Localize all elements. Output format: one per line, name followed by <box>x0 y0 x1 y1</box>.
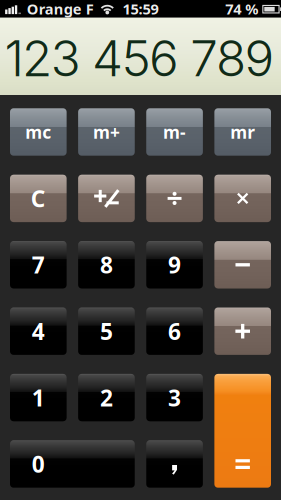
staticText: 5 <box>100 316 113 346</box>
staticText: 2 <box>100 382 113 413</box>
staticText: mc <box>25 120 51 143</box>
button[interactable]: C <box>10 175 67 222</box>
staticText: 1 <box>32 382 45 413</box>
staticText: C <box>31 183 46 213</box>
button[interactable]: 4 <box>10 307 67 355</box>
staticText: mr <box>230 120 255 143</box>
button[interactable]: m+ <box>78 108 135 156</box>
staticText: 74 % <box>225 0 258 19</box>
staticText: 7 <box>32 250 45 280</box>
button[interactable]: 5 <box>78 307 135 355</box>
staticText: 9 <box>168 250 181 280</box>
button[interactable]: 6 <box>146 307 203 355</box>
button[interactable]: Minus <box>214 241 271 288</box>
button[interactable]: 8 <box>78 241 135 288</box>
staticText: 15:59 <box>122 0 158 19</box>
staticText: 0 <box>32 449 45 479</box>
button[interactable]: Plus <box>214 307 271 355</box>
staticText: 3 <box>168 382 181 413</box>
button[interactable]: Plus minus <box>78 175 135 222</box>
staticText: 6 <box>168 316 181 346</box>
button[interactable]: mr <box>214 108 271 156</box>
button[interactable]: 9 <box>146 241 203 288</box>
button[interactable]: 1 <box>10 374 67 421</box>
staticText: 8 <box>100 250 113 280</box>
staticText: m+ <box>93 120 120 143</box>
staticText: 4 <box>32 316 45 346</box>
button[interactable]: Equals <box>214 374 271 488</box>
button[interactable]: Multiply <box>214 175 271 222</box>
button[interactable]: Decimal separator <box>146 440 203 488</box>
button[interactable]: 0 <box>10 440 135 488</box>
button[interactable]: mc <box>10 108 67 156</box>
button[interactable]: m- <box>146 108 203 156</box>
staticText: m- <box>163 120 186 143</box>
button[interactable]: Divide <box>146 175 203 222</box>
staticText: 123 456 789 <box>4 28 274 88</box>
button[interactable]: 7 <box>10 241 67 288</box>
button[interactable]: 3 <box>146 374 203 421</box>
staticText: Orange F <box>27 0 94 19</box>
button[interactable]: 2 <box>78 374 135 421</box>
